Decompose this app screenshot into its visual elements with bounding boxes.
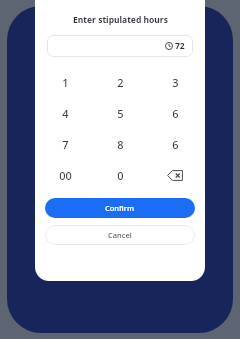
staticText: 6 bbox=[172, 137, 179, 152]
staticText: 4 bbox=[62, 106, 69, 121]
button[interactable]: Confirm bbox=[45, 198, 195, 218]
button[interactable]: Cancel bbox=[45, 225, 195, 245]
button[interactable]: 72 bbox=[47, 35, 193, 57]
button[interactable]: 4 bbox=[40, 98, 90, 129]
button[interactable]: Backspace bbox=[150, 160, 200, 191]
staticText: 5 bbox=[117, 106, 124, 121]
staticText: 1 bbox=[62, 75, 69, 90]
staticText: 8 bbox=[117, 137, 124, 152]
staticText: Confirm bbox=[105, 203, 135, 213]
button[interactable]: 2 bbox=[95, 67, 145, 98]
button[interactable]: 6 bbox=[150, 129, 200, 160]
button[interactable]: 1 bbox=[40, 67, 90, 98]
staticText: 00 bbox=[59, 168, 72, 183]
button[interactable]: 8 bbox=[95, 129, 145, 160]
button[interactable]: 3 bbox=[150, 67, 200, 98]
staticText: 2 bbox=[117, 75, 124, 90]
staticText: 7 bbox=[62, 137, 69, 152]
staticText: 0 bbox=[117, 168, 124, 183]
staticText: 3 bbox=[172, 75, 179, 90]
button[interactable]: 6 bbox=[150, 98, 200, 129]
button[interactable]: 0 bbox=[95, 160, 145, 191]
staticText: 72 bbox=[175, 40, 185, 52]
staticText: 6 bbox=[172, 106, 179, 121]
staticText: Cancel bbox=[108, 230, 132, 240]
staticText: Enter stipulated hours bbox=[73, 14, 168, 26]
button[interactable]: 5 bbox=[95, 98, 145, 129]
button[interactable]: 00 bbox=[40, 160, 90, 191]
button[interactable]: 7 bbox=[40, 129, 90, 160]
